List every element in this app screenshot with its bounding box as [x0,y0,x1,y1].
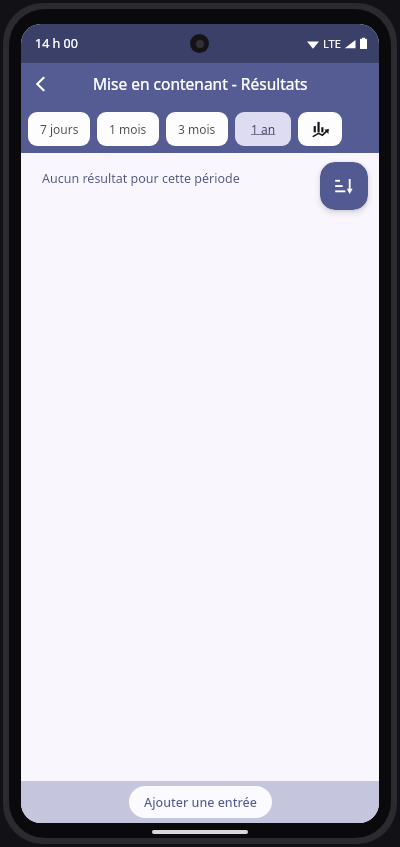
staticText: Mise en contenant - Résultats [93,73,308,94]
button[interactable]: 3 mois [166,112,228,146]
staticText: 3 mois [178,121,216,137]
button[interactable]: 1 an [235,112,291,146]
button[interactable]: Trier [320,162,368,210]
staticText: 1 an [251,121,276,137]
staticText: Ajouter une entrée [144,794,257,811]
staticText: LTE [323,36,341,51]
staticText: 14 h 00 [35,35,78,52]
button[interactable]: Back [21,64,61,104]
staticText: 7 jours [40,121,79,137]
button[interactable]: 7 jours [28,112,90,146]
staticText: 1 mois [109,121,147,137]
button[interactable]: Ajouter une entrée [129,786,272,818]
staticText: Aucun résultat pour cette période [42,170,240,187]
button[interactable]: Graphique [298,112,342,146]
button[interactable]: 1 mois [97,112,159,146]
